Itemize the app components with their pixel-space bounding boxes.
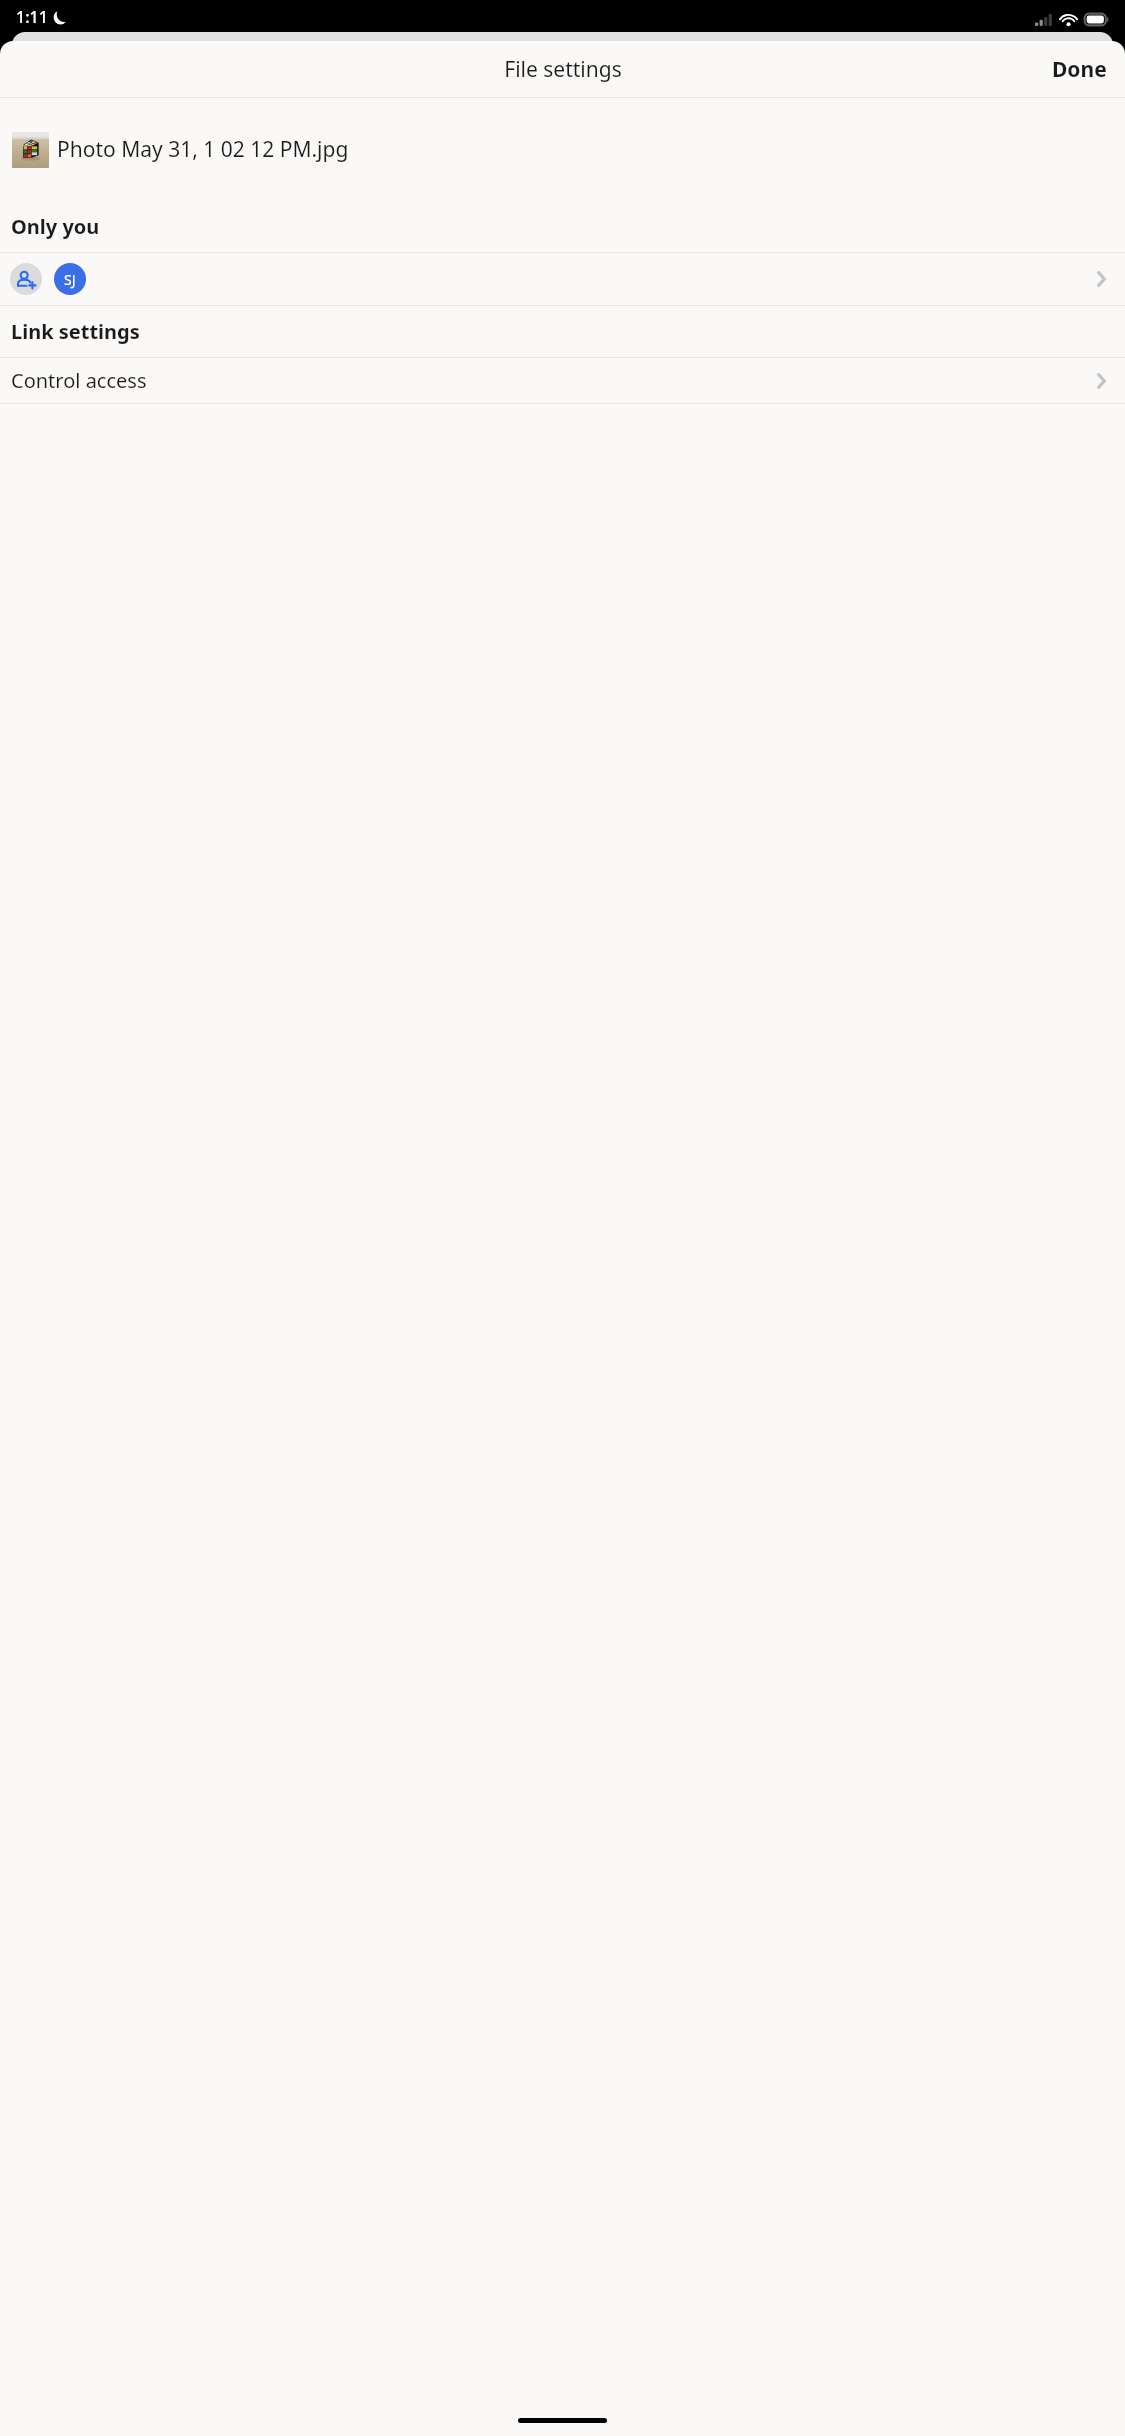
staticText: 1:11 <box>16 6 48 28</box>
button[interactable]: Photo May 31, 1 02 12 PM.jpg <box>0 98 1125 201</box>
other: Open <box>1089 369 1113 393</box>
staticText: Only you <box>11 213 100 240</box>
staticText: Link settings <box>11 318 140 345</box>
staticText: Control access <box>11 367 147 394</box>
staticText: File settings <box>504 55 622 84</box>
button[interactable]: Done <box>1034 45 1125 94</box>
button[interactable]: Control access <box>0 358 1125 403</box>
button[interactable]: SJ <box>0 253 1125 305</box>
other: Open <box>1089 267 1113 291</box>
staticText: SJ <box>64 270 76 289</box>
staticText: Photo May 31, 1 02 12 PM.jpg <box>57 135 349 164</box>
staticText: Done <box>1052 55 1107 84</box>
